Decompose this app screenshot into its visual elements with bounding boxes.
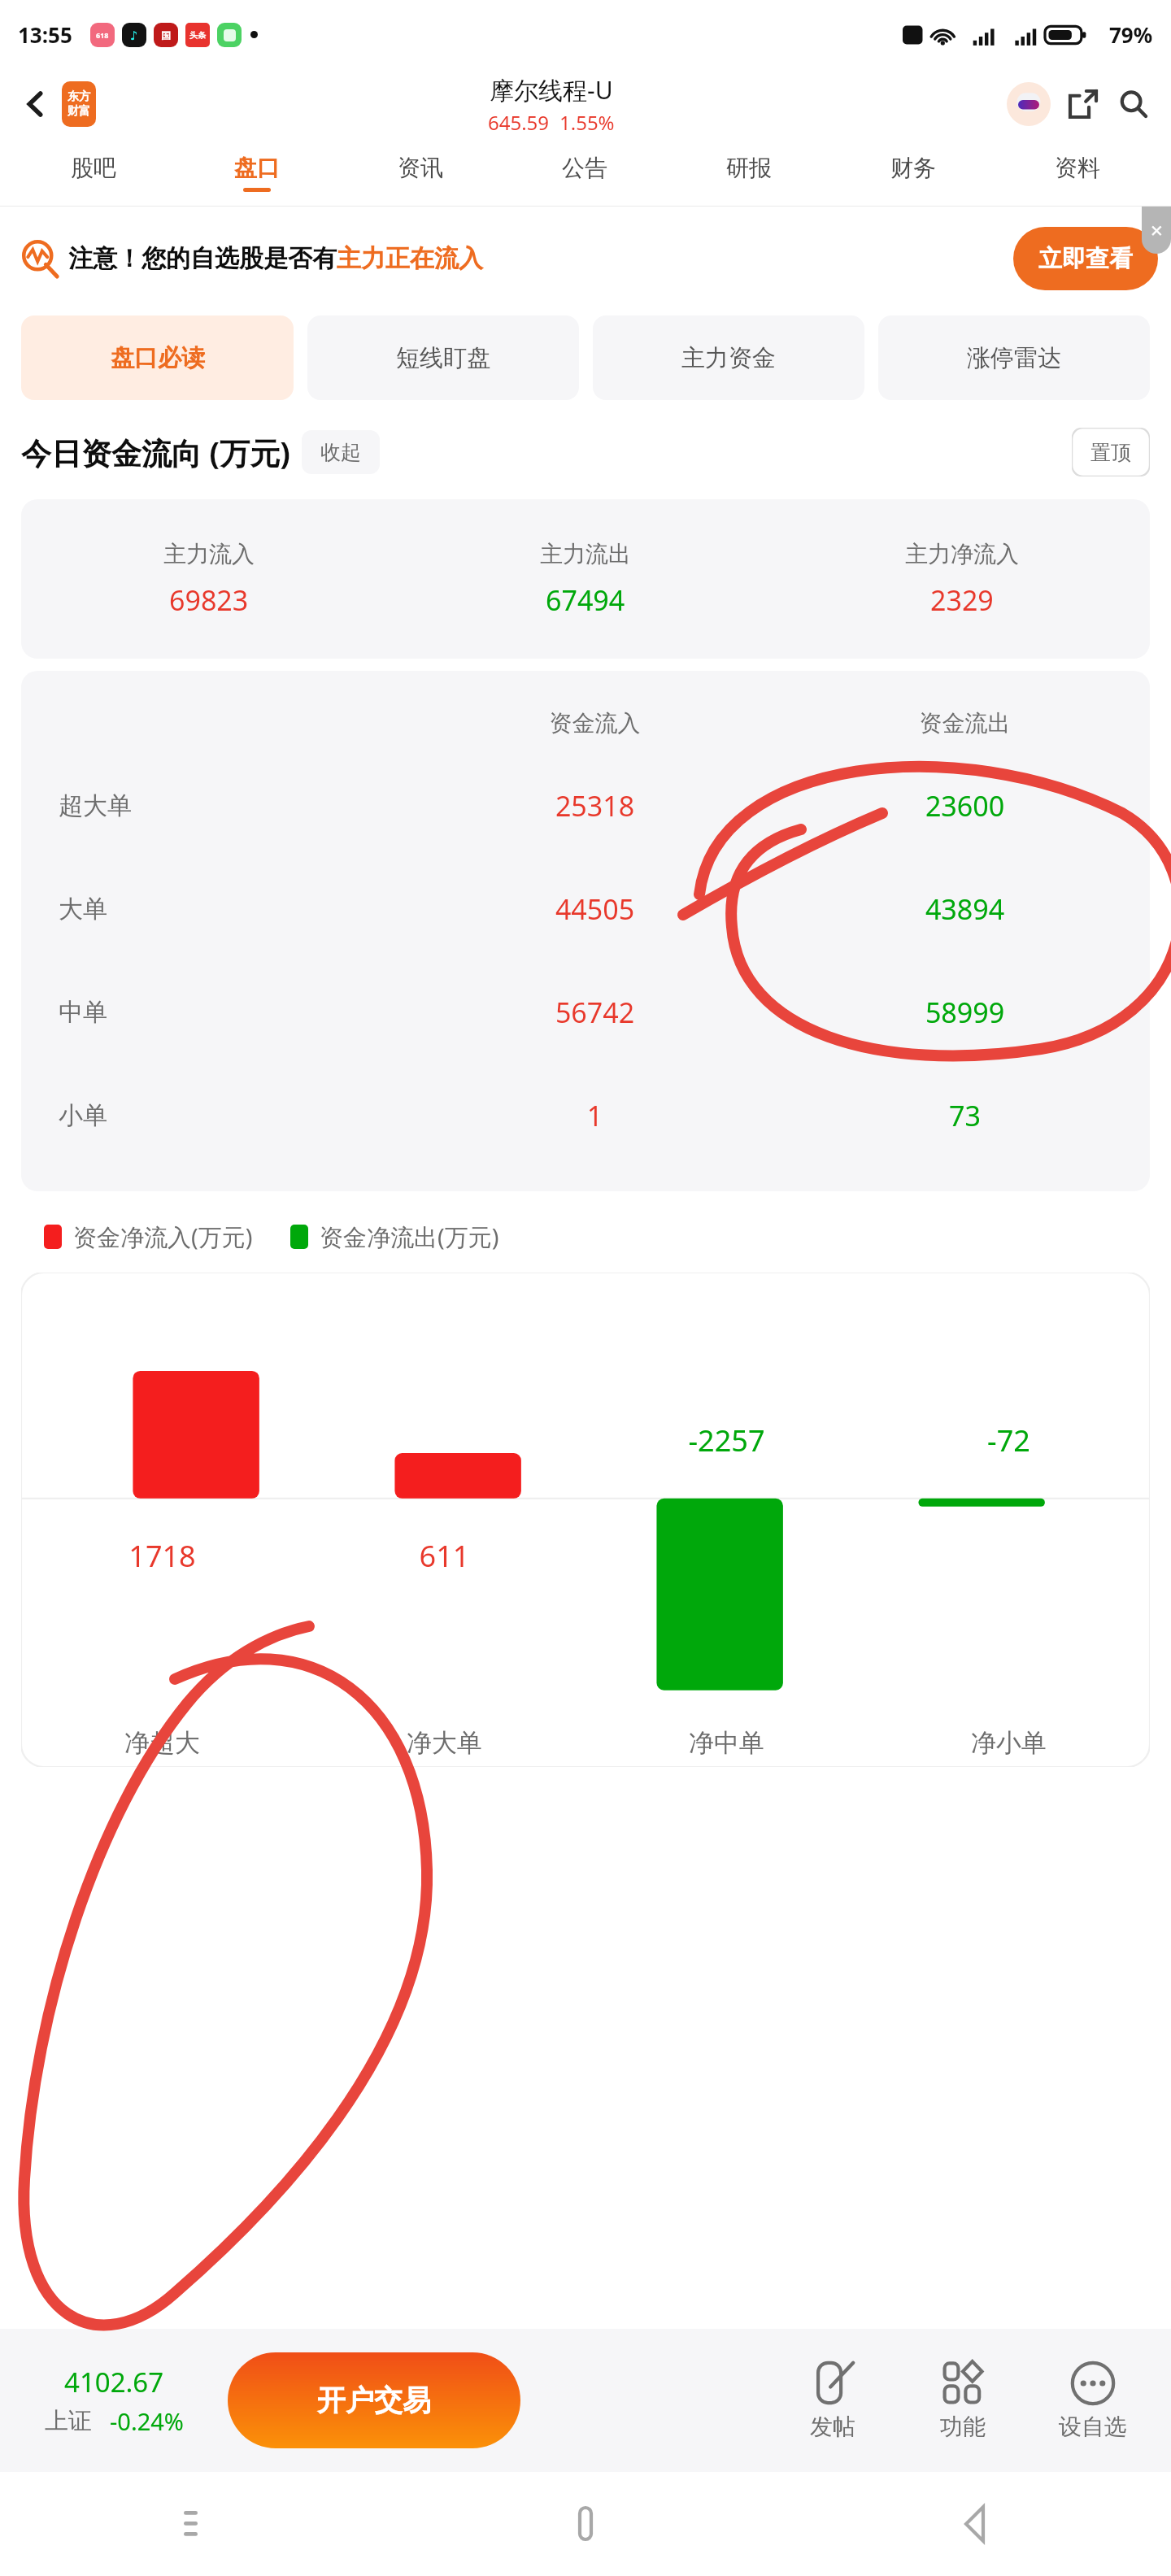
staticText: 大单 [59,894,107,925]
button[interactable]: Assistant [1007,82,1051,126]
staticText: 资金流出 [780,709,1150,738]
button[interactable]: 收起 [302,430,380,474]
staticText: 58999 [780,994,1150,1031]
staticText: 小单 [59,1100,107,1131]
button[interactable]: 主力流入 [21,499,1150,659]
staticText: ♪ [130,28,138,42]
staticText: 净超大 [21,1727,303,1759]
button[interactable]: 置顶 [1072,428,1150,476]
staticText: 13:55 [18,20,72,49]
staticText: 涨停雷达 [967,343,1061,373]
staticText: 43894 [780,890,1150,928]
staticText: 4102.67 [64,2364,164,2400]
button[interactable]: 超大单 [21,754,1150,857]
staticText: 盘口 [234,154,280,182]
staticText: 摩尔线程-U [490,73,613,107]
staticText: 2329 [930,581,994,619]
staticText: 资金净流出(万元) [320,1221,499,1253]
staticText: 股吧 [71,154,116,182]
staticText: 盘口必读 [111,343,205,373]
staticText: 资讯 [398,154,443,182]
button[interactable]: 短线盯盘 [307,315,579,400]
staticText: 主力资金 [681,343,776,373]
staticText: 主力正在流入 [337,243,483,274]
staticText: 中单 [59,997,107,1028]
button[interactable]: 股吧 [11,139,175,206]
button[interactable]: Share [1062,83,1104,125]
staticText: 超大单 [59,790,132,821]
staticText: 收起 [320,440,361,465]
staticText: 置顶 [1090,440,1131,465]
staticText: 56742 [410,994,780,1031]
staticText: 25318 [410,787,780,825]
staticText: 公告 [562,154,607,182]
staticText: 44505 [410,890,780,928]
staticText: 73 [780,1097,1150,1134]
button[interactable]: 主力资金 [593,315,864,400]
staticText: 立即查看 [1038,244,1133,274]
staticText: 国 [161,29,171,41]
button[interactable]: Recents [0,2472,390,2576]
staticText: 主力流出 [540,540,631,568]
button[interactable]: 中单 [21,960,1150,1064]
staticText: 净小单 [868,1727,1150,1759]
staticText: 618 [96,30,109,40]
staticText: 净大单 [303,1727,585,1759]
staticText: 净中单 [585,1727,868,1759]
staticText: 开户交易 [317,2382,431,2418]
staticText: 财富 [67,104,90,119]
button[interactable]: 小单 [21,1064,1150,1167]
staticText: 资金流入 [410,709,780,738]
button[interactable]: 发帖 [768,2361,898,2441]
staticText: 东方 [67,89,90,104]
staticText: 资金净流入(万元) [73,1221,253,1253]
staticText: 79% [1109,20,1153,49]
staticText: 财务 [890,154,936,182]
staticText: -0.24% [110,2405,184,2437]
staticText: 主力流入 [163,540,255,568]
staticText: 主力净流入 [905,540,1019,568]
button[interactable]: Back [16,85,55,124]
button[interactable]: 大单 [21,857,1150,960]
button[interactable]: 财务 [831,139,995,206]
staticText: -2257 [585,1421,868,1460]
staticText: 研报 [726,154,772,182]
button[interactable]: 资料 [995,139,1160,206]
button[interactable]: Close [1142,207,1171,254]
staticText: 69823 [169,581,249,619]
staticText: 发帖 [810,2413,855,2441]
staticText: 今日资金流向 (万元) [21,432,290,473]
button[interactable]: 涨停雷达 [878,315,1150,400]
button[interactable]: 资讯 [338,139,503,206]
button[interactable]: 功能 [898,2361,1028,2441]
button[interactable]: 盘口 [175,139,338,206]
button[interactable]: 4102.67 [0,2364,228,2437]
button[interactable]: 东方 [62,81,96,127]
button[interactable]: 1718 [21,1273,1150,1767]
staticText: 611 [303,1536,585,1576]
button[interactable]: Search [1112,83,1155,125]
staticText: ✕ [1150,221,1164,240]
staticText: 1 [410,1097,780,1134]
staticText: 645.59 [488,109,550,136]
staticText: 注意！您的自选股是否有 [68,243,337,274]
button[interactable]: 设自选 [1028,2361,1158,2441]
button[interactable]: 研报 [667,139,831,206]
staticText: 资料 [1055,154,1100,182]
staticText: 短线盯盘 [396,343,490,373]
staticText: 1718 [21,1536,303,1576]
staticText: -72 [868,1421,1150,1460]
button[interactable]: Back [781,2472,1171,2576]
staticText: 头条 [189,30,206,41]
button[interactable]: 盘口必读 [21,315,294,400]
button[interactable]: 开户交易 [228,2352,520,2448]
button[interactable]: 公告 [503,139,667,206]
staticText: 设自选 [1059,2413,1127,2441]
button[interactable]: Home [390,2472,781,2576]
staticText: 上证 [45,2406,92,2436]
staticText: 1.55% [559,109,615,136]
staticText: 功能 [940,2413,986,2441]
button[interactable]: 立即查看 [1013,227,1158,290]
staticText: 23600 [780,787,1150,825]
staticText: 67494 [546,581,625,619]
